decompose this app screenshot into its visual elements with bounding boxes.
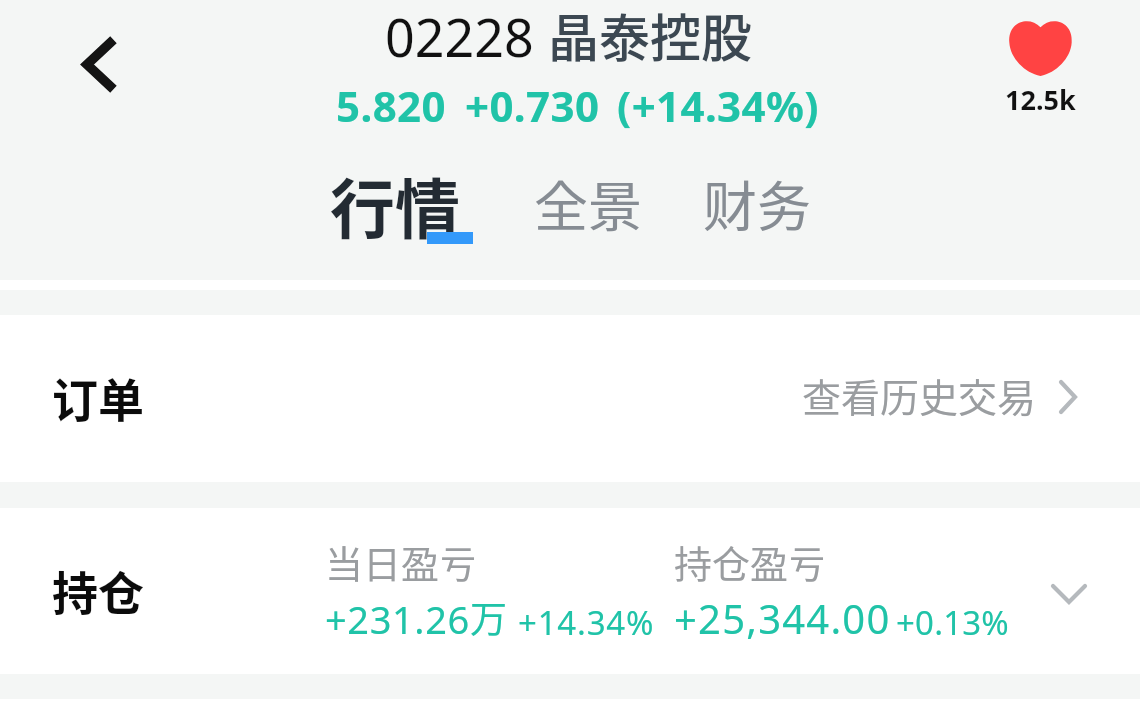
- button[interactable]: 持仓: [0, 508, 1140, 674]
- staticText: 订单: [52, 364, 144, 431]
- button[interactable]: Expand holdings: [1050, 582, 1090, 608]
- staticText: 万: [470, 590, 507, 644]
- staticText: +14.34%: [518, 600, 655, 645]
- staticText: 当日盈亏: [325, 534, 478, 589]
- staticText: +0.13%: [896, 600, 1009, 645]
- staticText: 02228: [385, 1, 548, 72]
- button[interactable]: 查看历史交易: [796, 359, 1085, 431]
- staticText: 12.5k: [1005, 81, 1076, 118]
- staticText: 行情: [330, 158, 461, 252]
- staticText: 5.820: [336, 77, 446, 134]
- staticText: +0.730: [465, 77, 600, 134]
- staticText: 全景: [534, 164, 642, 242]
- staticText: +25,344.00: [674, 591, 891, 645]
- staticText: +231.26: [325, 593, 470, 645]
- button[interactable]: 行情: [324, 154, 467, 256]
- button[interactable]: 全景: [528, 160, 648, 246]
- button[interactable]: 订单: [0, 315, 1140, 482]
- staticText: (+14.34%): [617, 77, 819, 134]
- staticText: 持仓盈亏: [674, 534, 827, 589]
- button[interactable]: Back: [48, 12, 152, 118]
- button[interactable]: 财务: [697, 160, 817, 246]
- staticText: 查看历史交易: [802, 367, 1037, 423]
- staticText: 晶泰控股: [548, 0, 753, 72]
- staticText: 财务: [703, 164, 811, 242]
- staticText: 持仓: [52, 557, 144, 624]
- button[interactable]: Like: [1005, 20, 1076, 118]
